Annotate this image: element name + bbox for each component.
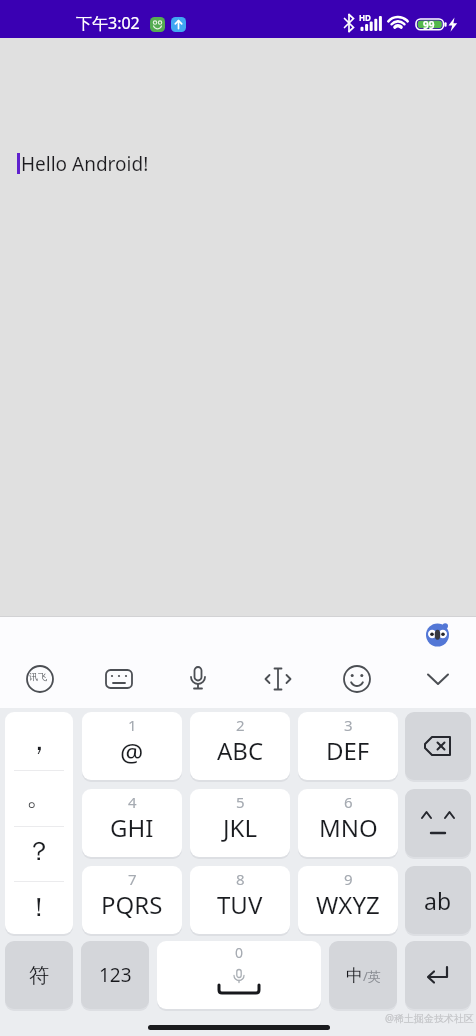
staticText: @ xyxy=(120,734,144,769)
button[interactable] xyxy=(424,621,451,648)
staticText: ？ xyxy=(26,835,52,868)
staticText: 讯飞 xyxy=(29,671,47,682)
staticText: JKL xyxy=(223,811,257,844)
staticText: DEF xyxy=(326,734,370,767)
staticText: TUV xyxy=(217,888,263,921)
button[interactable] xyxy=(20,659,60,699)
staticText: 0 xyxy=(235,943,244,962)
staticText: 1 xyxy=(128,715,137,735)
button[interactable]: 123 xyxy=(81,941,149,1009)
staticText: HD xyxy=(359,12,371,23)
button[interactable]: 4 xyxy=(82,789,182,857)
staticText: ！ xyxy=(26,891,52,924)
button[interactable]: 9 xyxy=(298,866,398,934)
staticText: ab xyxy=(424,885,452,916)
button[interactable] xyxy=(405,789,471,857)
button[interactable]: ， xyxy=(5,712,73,934)
staticText: 5 xyxy=(236,792,245,812)
button[interactable] xyxy=(337,659,377,699)
button[interactable] xyxy=(405,941,471,1009)
button[interactable] xyxy=(258,659,298,699)
staticText: WXYZ xyxy=(316,888,380,921)
button[interactable]: 3 xyxy=(298,712,398,780)
button[interactable]: 6 xyxy=(298,789,398,857)
staticText: Hello Android! xyxy=(21,151,149,177)
staticText: 中/英 xyxy=(346,965,381,986)
staticText: GHI xyxy=(110,811,154,844)
button[interactable] xyxy=(99,659,139,699)
staticText: PQRS xyxy=(101,888,163,921)
staticText: 6 xyxy=(344,792,353,812)
staticText: 8 xyxy=(236,869,245,889)
button[interactable] xyxy=(418,659,458,699)
staticText: 符 xyxy=(29,963,49,988)
button[interactable]: 中/英 xyxy=(329,941,397,1009)
button[interactable]: 符 xyxy=(5,941,73,1009)
staticText: @稀土掘金技术社区 xyxy=(385,1011,474,1025)
button[interactable]: 2 xyxy=(190,712,290,780)
button[interactable] xyxy=(405,712,471,780)
staticText: ABC xyxy=(217,734,264,767)
button[interactable] xyxy=(178,659,218,699)
staticText: 。 xyxy=(26,780,52,813)
staticText: 4 xyxy=(128,792,137,812)
button[interactable]: 5 xyxy=(190,789,290,857)
button[interactable]: 1 xyxy=(82,712,182,780)
staticText: 123 xyxy=(99,962,132,988)
staticText: 7 xyxy=(128,869,137,889)
button[interactable]: 8 xyxy=(190,866,290,934)
staticText: ， xyxy=(25,723,53,758)
staticText: 2 xyxy=(236,715,245,735)
button[interactable]: 7 xyxy=(82,866,182,934)
button[interactable]: ab xyxy=(405,866,471,934)
staticText: MNO xyxy=(319,811,378,844)
staticText: 3 xyxy=(344,715,353,735)
staticText: 9 xyxy=(344,869,353,889)
staticText: 99 xyxy=(423,18,435,32)
button[interactable]: 0 xyxy=(157,941,321,1009)
staticText: 下午3:02 xyxy=(76,12,140,34)
